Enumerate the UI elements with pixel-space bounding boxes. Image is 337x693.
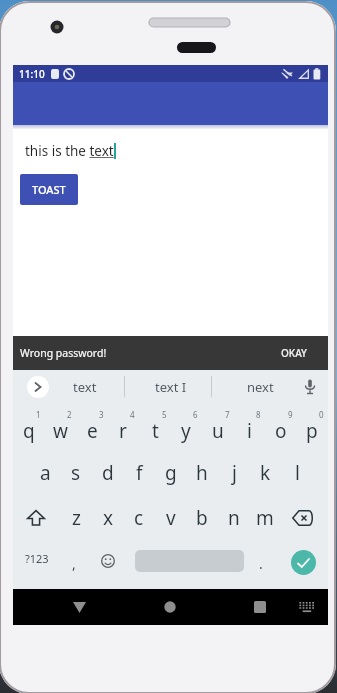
staticText: q [23, 418, 35, 444]
staticText: n [228, 505, 240, 531]
button[interactable] [27, 376, 49, 398]
staticText: 3 [99, 409, 104, 420]
staticText: next [247, 378, 274, 396]
staticText: y [181, 418, 191, 444]
staticText: ?123 [25, 551, 49, 566]
button[interactable] [246, 592, 274, 622]
staticText: 11:10 [19, 67, 45, 81]
staticText: text I [155, 378, 187, 396]
staticText: 4 [130, 409, 135, 420]
staticText: text [73, 378, 97, 396]
button[interactable] [97, 550, 119, 572]
staticText: b [196, 505, 208, 531]
staticText: i [247, 418, 252, 444]
button[interactable] [287, 504, 317, 532]
staticText: Wrong password! [20, 346, 107, 360]
staticText: u [212, 418, 224, 444]
staticText: 9 [288, 409, 293, 420]
staticText: 0 [319, 409, 324, 420]
staticText: l [295, 460, 300, 486]
button[interactable]: TOAST [20, 174, 78, 205]
button[interactable] [21, 503, 51, 533]
button[interactable]: next [217, 370, 303, 403]
button[interactable]: text I [128, 370, 214, 403]
staticText: h [196, 460, 208, 486]
staticText: 2 [67, 409, 72, 420]
button[interactable] [156, 592, 184, 622]
staticText: f [136, 460, 143, 486]
staticText: o [275, 418, 287, 444]
staticText: OKAY [281, 346, 307, 360]
staticText: c [134, 505, 144, 531]
staticText: m [256, 505, 274, 531]
staticText: 5 [162, 409, 167, 420]
staticText: z [72, 505, 81, 531]
button[interactable] [65, 592, 93, 622]
staticText: d [102, 460, 114, 486]
staticText: k [260, 460, 271, 486]
button[interactable] [296, 593, 318, 621]
staticText: s [71, 460, 81, 486]
staticText: p [306, 418, 318, 444]
staticText: this is the text [25, 142, 114, 160]
button[interactable]: ?123 [21, 545, 53, 571]
staticText: . [259, 554, 263, 573]
staticText: 1 [36, 409, 41, 420]
button[interactable] [296, 370, 324, 403]
staticText: 8 [256, 409, 261, 420]
staticText: w [53, 418, 68, 444]
staticText: 6 [193, 409, 198, 420]
staticText: , [72, 554, 76, 573]
staticText: 7 [225, 409, 230, 420]
staticText: e [87, 418, 98, 444]
button[interactable] [291, 550, 316, 575]
staticText: g [165, 460, 177, 486]
button[interactable]: text [53, 370, 117, 403]
staticText: TOAST [32, 182, 66, 197]
staticText: a [40, 460, 51, 486]
staticText: v [166, 505, 176, 531]
staticText: x [103, 505, 114, 531]
staticText: j [232, 460, 237, 486]
button[interactable]: OKAY [267, 342, 321, 364]
staticText: r [119, 418, 127, 444]
staticText: t [152, 418, 159, 444]
